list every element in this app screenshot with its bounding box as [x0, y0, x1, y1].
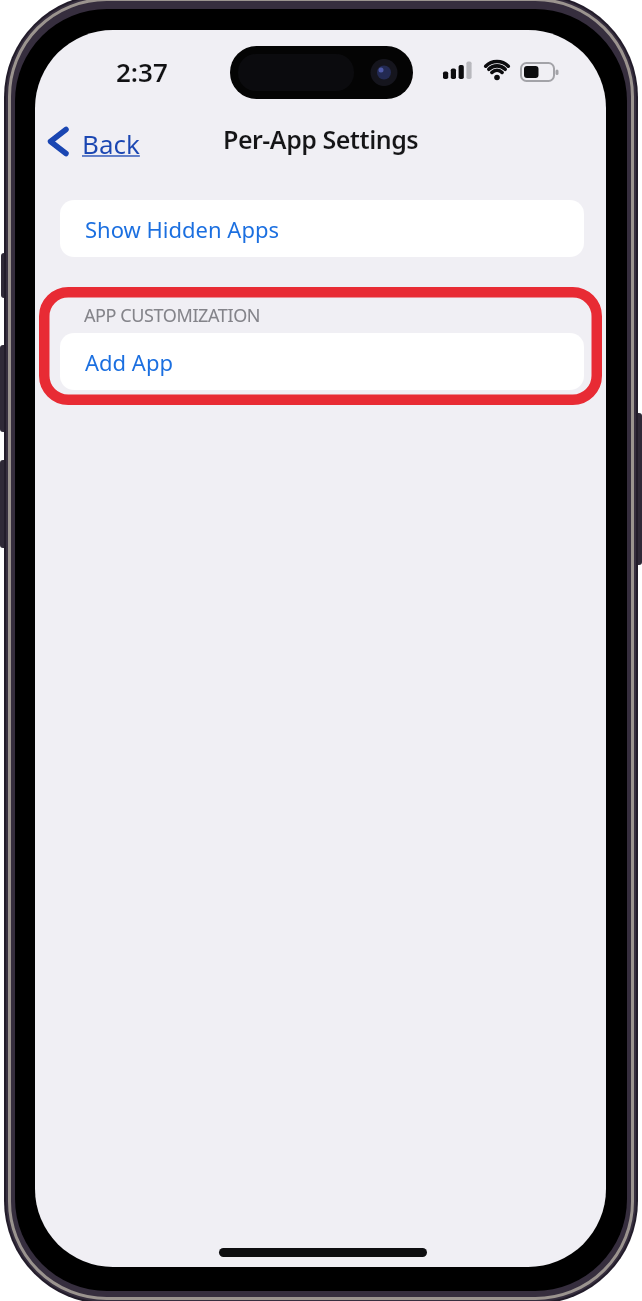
staticText: Show Hidden Apps [85, 214, 279, 244]
button[interactable]: Add App [60, 333, 584, 390]
button[interactable]: Back [82, 126, 140, 161]
staticText: APP CUSTOMIZATION [84, 303, 261, 328]
staticText: Add App [85, 347, 173, 377]
staticText: Per-App Settings [223, 122, 419, 156]
staticText: 2:37 [116, 54, 168, 88]
button[interactable]: Show Hidden Apps [60, 200, 584, 257]
staticText: Back [82, 126, 140, 161]
